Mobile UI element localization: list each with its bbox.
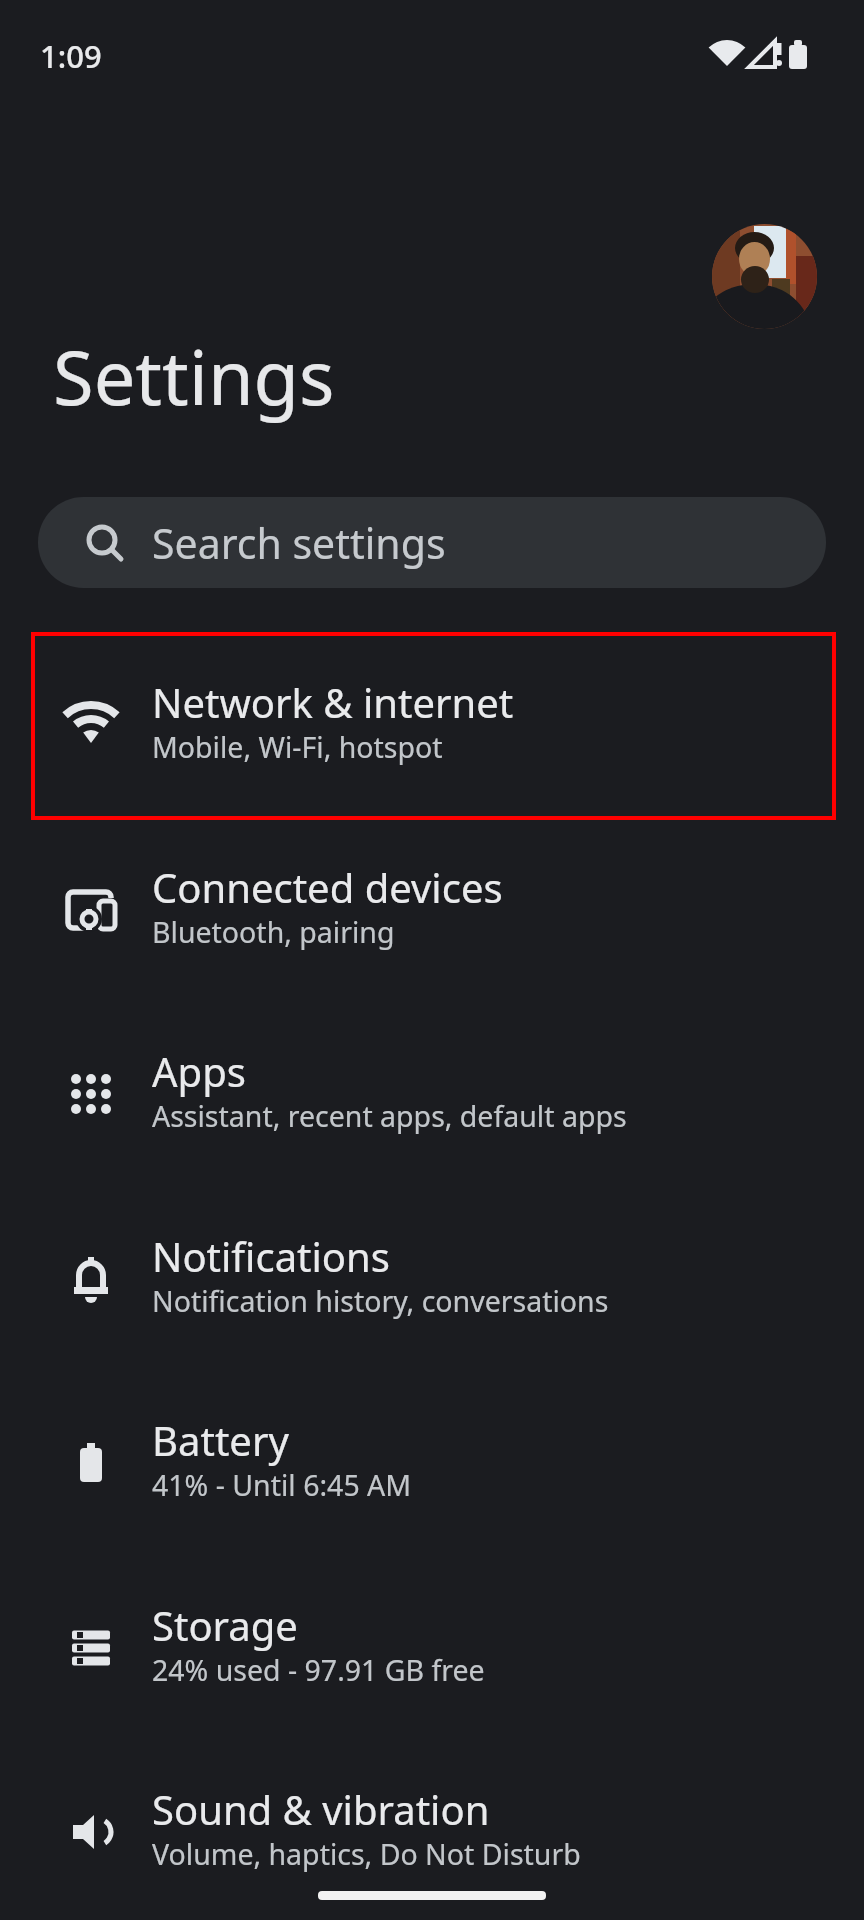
button[interactable]: Search settings xyxy=(38,497,826,588)
button[interactable] xyxy=(712,224,817,329)
staticText: Network & internet xyxy=(152,675,514,729)
staticText: Bluetooth, pairing xyxy=(152,913,395,952)
button[interactable]: Sound & vibration xyxy=(0,1740,864,1920)
button[interactable]: Apps xyxy=(0,1002,864,1186)
staticText: Mobile, Wi-Fi, hotspot xyxy=(152,728,443,767)
button[interactable]: Connected devices xyxy=(0,818,864,1002)
staticText: Settings xyxy=(53,326,335,427)
staticText: 1:09 xyxy=(40,35,102,77)
staticText: Search settings xyxy=(152,515,446,571)
button[interactable]: Network & internet xyxy=(0,633,864,817)
staticText: Volume, haptics, Do Not Disturb xyxy=(152,1835,581,1874)
staticText: 41% - Until 6:45 AM xyxy=(152,1466,412,1505)
button[interactable]: Storage xyxy=(0,1556,864,1740)
button[interactable]: Notifications xyxy=(0,1187,864,1371)
staticText: Notification history, conversations xyxy=(152,1282,609,1321)
staticText: Notifications xyxy=(152,1229,390,1283)
staticText: Assistant, recent apps, default apps xyxy=(152,1097,627,1136)
staticText: Sound & vibration xyxy=(152,1782,490,1836)
staticText: Connected devices xyxy=(152,860,503,914)
staticText: Battery xyxy=(152,1413,289,1467)
button[interactable]: Battery xyxy=(0,1371,864,1555)
staticText: Apps xyxy=(152,1044,246,1098)
staticText: Storage xyxy=(152,1598,298,1652)
staticText: 24% used - 97.91 GB free xyxy=(152,1651,485,1690)
